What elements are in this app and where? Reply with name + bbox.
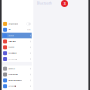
staticText: Do Not Disturb: [8, 52, 17, 54]
button[interactable]: Sounds: [2, 44, 32, 50]
button[interactable]: Bluetooth: [2, 33, 32, 38]
staticText: Home: [27, 29, 31, 31]
button[interactable]: Control Center: [2, 72, 32, 77]
button[interactable]: Do Not Disturb: [2, 50, 32, 56]
staticText: Screen Time: [8, 58, 17, 60]
staticText: Wi-Fi: [8, 29, 10, 31]
button[interactable]: Display & Brightness: [2, 77, 32, 83]
button[interactable]: Screen Time: [2, 56, 32, 62]
staticText: Display & Brightness: [8, 79, 22, 81]
staticText: Bluetooth: [37, 2, 52, 5]
staticText: Sounds: [8, 46, 14, 48]
staticText: Airplane Mode: [8, 23, 18, 25]
staticText: Notifications: [8, 41, 16, 42]
staticText: Bluetooth: [8, 35, 14, 36]
staticText: Accessibility: [8, 85, 16, 87]
button[interactable]: Airplane Mode: [2, 21, 32, 27]
button[interactable]: General: [2, 66, 32, 72]
button[interactable]: Notifications: [2, 39, 32, 44]
staticText: General: [8, 68, 14, 70]
staticText: 3: [63, 1, 65, 6]
button[interactable]: Accessibility: [2, 83, 32, 89]
staticText: Control Center: [8, 74, 18, 75]
button[interactable]: Wi-Fi: [2, 27, 32, 33]
